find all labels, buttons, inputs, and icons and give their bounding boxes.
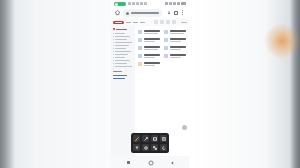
button[interactable]: Back [167,158,176,167]
button[interactable]: Action 8 [160,144,167,151]
button[interactable] [113,21,124,24]
button[interactable] [164,46,186,50]
button[interactable] [113,51,133,52]
button[interactable] [138,30,160,34]
button[interactable] [113,39,133,40]
button[interactable]: Action 3 [151,135,158,142]
button[interactable] [113,36,133,37]
button[interactable] [113,60,133,61]
button[interactable] [113,42,133,43]
button[interactable] [138,62,160,66]
button[interactable]: More options [179,9,186,16]
button[interactable]: Action 2 [142,135,149,142]
button[interactable]: Action 7 [151,144,158,151]
button[interactable]: Action 1 [133,135,140,142]
button[interactable]: Action 5 [133,144,140,151]
button[interactable] [138,46,160,50]
button[interactable] [138,38,160,42]
button[interactable] [123,9,162,17]
button[interactable] [164,54,186,58]
button[interactable] [113,57,133,58]
button[interactable] [113,48,133,49]
button[interactable]: Drag handle [182,125,187,130]
button[interactable] [113,33,133,34]
button[interactable]: Action 6 [142,144,149,151]
button[interactable] [113,54,133,55]
button[interactable]: Recent apps [124,158,133,167]
button[interactable] [164,30,186,34]
button[interactable]: Tabs [172,9,179,16]
button[interactable]: Download [165,9,172,16]
button[interactable] [164,38,186,42]
button[interactable] [113,66,133,67]
button[interactable]: Home [114,9,121,16]
button[interactable] [113,45,133,46]
button[interactable] [113,63,133,64]
button[interactable]: Home [146,158,155,167]
button[interactable] [138,54,160,58]
button[interactable]: Action 4 [160,135,167,142]
